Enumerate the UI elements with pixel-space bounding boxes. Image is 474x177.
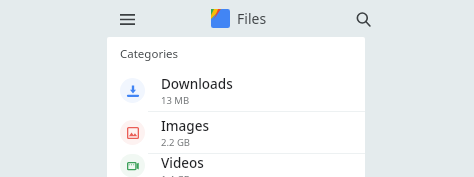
staticText: 2.2 GB: [161, 136, 190, 149]
button[interactable]: Downloads: [107, 70, 365, 112]
staticText: Downloads: [161, 75, 233, 93]
button[interactable]: Search: [346, 2, 380, 36]
button[interactable]: Videos: [107, 154, 365, 177]
staticText: Files: [237, 9, 267, 28]
button[interactable]: Open navigation menu: [110, 2, 144, 36]
button[interactable]: Images: [107, 112, 365, 154]
staticText: 13 MB: [161, 94, 190, 107]
staticText: Categories: [120, 46, 179, 62]
staticText: 1.4 GB: [161, 173, 190, 177]
staticText: Images: [161, 117, 209, 135]
staticText: Videos: [161, 154, 204, 172]
